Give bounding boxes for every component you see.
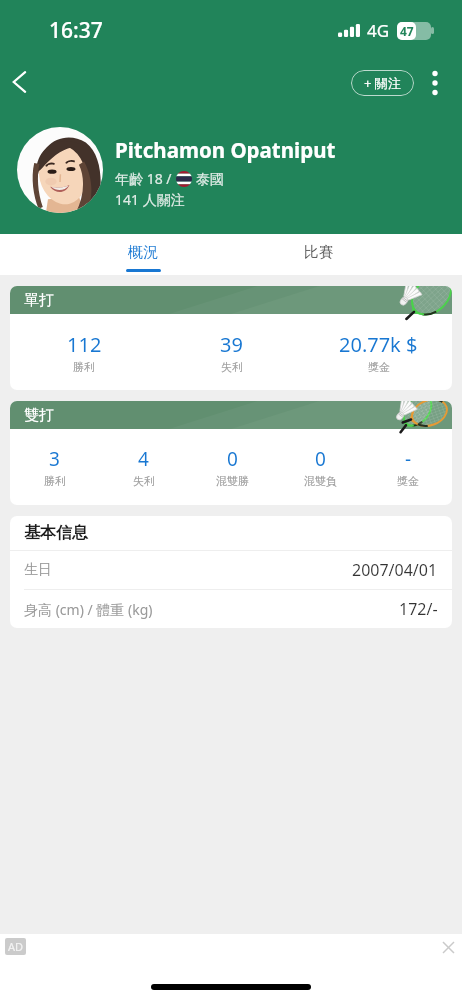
- staticText: 20.77k $: [339, 331, 418, 358]
- button[interactable]: More options: [418, 66, 452, 100]
- staticText: + 關注: [364, 74, 401, 92]
- staticText: 16:37: [49, 16, 103, 45]
- staticText: 0: [227, 446, 238, 472]
- staticText: 身高 (cm) / 體重 (kg): [24, 600, 153, 619]
- staticText: 3: [49, 446, 60, 472]
- staticText: 39: [220, 331, 243, 358]
- staticText: 失利: [221, 360, 243, 374]
- button[interactable]: 生日: [10, 551, 452, 589]
- staticText: 比賽: [304, 243, 334, 262]
- staticText: 混雙勝: [216, 474, 249, 488]
- staticText: 47: [400, 23, 414, 39]
- staticText: AD: [8, 939, 24, 954]
- staticText: 112: [67, 331, 102, 358]
- staticText: Pitchamon Opatniput: [115, 136, 336, 164]
- button[interactable]: 身高 (cm) / 體重 (kg): [10, 590, 452, 628]
- staticText: 0: [315, 446, 326, 472]
- staticText: 概況: [128, 243, 158, 262]
- staticText: 基本信息: [24, 523, 88, 543]
- staticText: 生日: [24, 561, 52, 579]
- staticText: 年齡 18 /: [115, 169, 176, 188]
- staticText: 獎金: [368, 360, 390, 374]
- staticText: 172/-: [399, 598, 438, 620]
- staticText: 混雙負: [304, 474, 337, 488]
- staticText: 4G: [367, 19, 390, 42]
- staticText: 雙打: [24, 406, 54, 425]
- staticText: 單打: [24, 291, 54, 310]
- button[interactable]: 比賽: [231, 234, 407, 275]
- button[interactable]: 概況: [55, 234, 231, 275]
- staticText: 4: [138, 446, 149, 472]
- button[interactable]: Pitchamon Opatniput: [0, 127, 462, 213]
- staticText: 失利: [133, 474, 155, 488]
- staticText: 獎金: [397, 474, 419, 488]
- staticText: 勝利: [44, 474, 66, 488]
- staticText: 泰國: [192, 169, 224, 188]
- staticText: 141 人關注: [115, 190, 185, 209]
- button[interactable]: + 關注: [351, 70, 414, 96]
- staticText: 2007/04/01: [352, 559, 438, 581]
- button[interactable]: Close ad: [433, 934, 462, 960]
- button[interactable]: Back: [0, 61, 40, 103]
- staticText: 勝利: [73, 360, 95, 374]
- staticText: -: [405, 446, 412, 472]
